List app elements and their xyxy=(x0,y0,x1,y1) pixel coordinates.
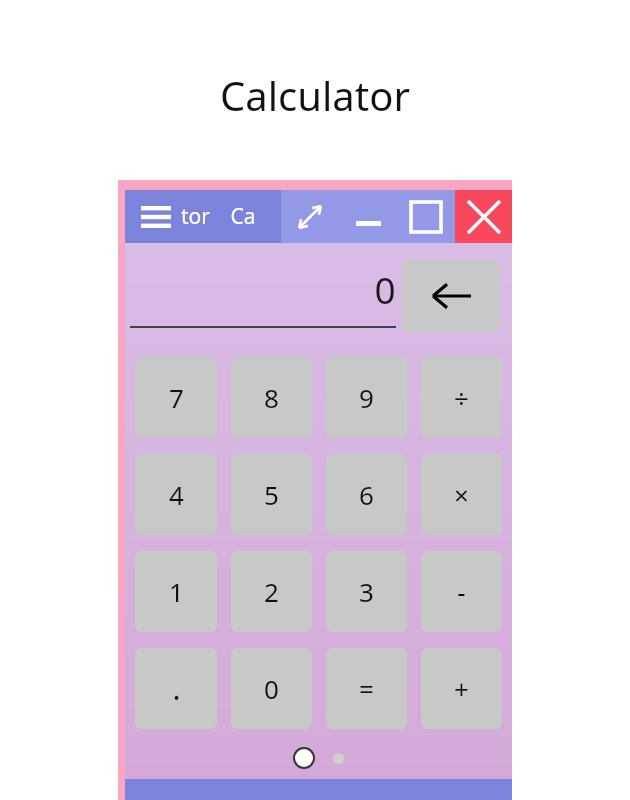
button[interactable]: Minimize xyxy=(339,190,397,243)
button[interactable]: = xyxy=(326,648,407,729)
button[interactable]: 6 xyxy=(326,454,407,535)
button[interactable]: 7 xyxy=(135,356,217,438)
staticText: 7 xyxy=(169,380,184,415)
button[interactable]: 8 xyxy=(231,356,312,438)
button[interactable]: 4 xyxy=(135,454,217,535)
staticText: 8 xyxy=(264,380,279,415)
button[interactable]: Page 2 xyxy=(333,753,344,764)
button[interactable]: 9 xyxy=(326,356,407,438)
button[interactable]: Page 1 xyxy=(295,749,313,767)
staticText: . xyxy=(172,668,181,709)
button[interactable]: 0 xyxy=(231,648,312,729)
button[interactable]: Maximize xyxy=(397,190,455,243)
staticText: ÷ xyxy=(454,380,469,415)
button[interactable]: 5 xyxy=(231,454,312,535)
staticText: 9 xyxy=(359,380,374,415)
button[interactable]: Menu xyxy=(139,200,173,234)
staticText: 0 xyxy=(374,264,396,314)
button[interactable]: - xyxy=(421,551,502,632)
button[interactable]: 3 xyxy=(326,551,407,632)
staticText: + xyxy=(454,671,469,706)
staticText: Ca xyxy=(230,202,256,231)
staticText: 5 xyxy=(264,477,279,512)
button[interactable]: . xyxy=(135,648,217,729)
staticText: 3 xyxy=(359,574,374,609)
staticText: Calculator xyxy=(220,68,410,122)
staticText: = xyxy=(359,671,374,706)
button[interactable]: × xyxy=(421,454,502,535)
staticText: 6 xyxy=(359,477,374,512)
button[interactable]: 2 xyxy=(231,551,312,632)
staticText: 1 xyxy=(169,574,184,609)
button[interactable]: 1 xyxy=(135,551,217,632)
staticText: tor xyxy=(181,202,210,231)
button[interactable]: + xyxy=(421,648,502,729)
button[interactable]: ÷ xyxy=(421,356,502,438)
staticText: × xyxy=(454,477,469,512)
button[interactable]: Restore xyxy=(281,190,339,243)
staticText: 4 xyxy=(169,477,184,512)
button[interactable]: Close xyxy=(455,190,512,243)
button[interactable]: Backspace xyxy=(402,260,500,332)
staticText: - xyxy=(457,574,466,609)
staticText: 2 xyxy=(264,574,279,609)
staticText: 0 xyxy=(264,671,279,706)
